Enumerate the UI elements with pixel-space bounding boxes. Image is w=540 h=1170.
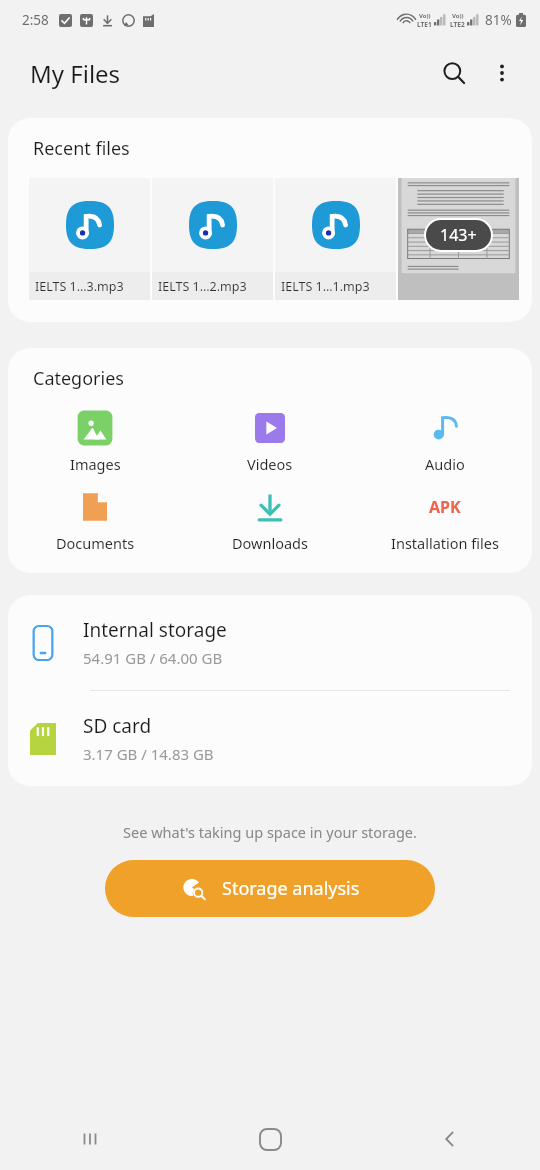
staticText: IELTS 1…3.mp3 [35,278,124,295]
button[interactable]: IELTS 1…2.mp3 [152,178,273,300]
staticText: SD card [83,713,152,739]
staticText: 143+ [440,224,477,246]
staticText: APK [429,496,461,518]
staticText: Recent files [33,136,130,161]
staticText: Vo)) [419,12,431,20]
staticText: My Files [30,57,121,90]
button[interactable]: 143+ [398,178,519,300]
staticText: 3.17 GB / 14.83 GB [83,744,214,764]
staticText: IELTS 1…2.mp3 [158,278,247,295]
button[interactable]: Documents [8,490,182,553]
button[interactable]: APK [357,490,532,553]
button[interactable]: Downloads [182,490,357,553]
button[interactable]: Back [360,1108,540,1170]
staticText: LTE1 [417,20,432,29]
staticText: See what's taking up space in your stora… [0,822,540,842]
button[interactable]: More options [478,49,526,97]
button[interactable]: Storage analysis [105,860,435,917]
staticText: Documents [56,533,135,553]
button[interactable]: Internal storage [8,595,532,690]
staticText: Installation files [391,533,499,553]
button[interactable]: Audio [357,411,532,474]
staticText: IELTS 1…1.mp3 [281,278,370,295]
staticText: 81% [485,11,512,29]
staticText: Videos [247,454,293,474]
button[interactable]: Search [430,49,478,97]
staticText: Internal storage [83,617,227,643]
staticText: 2:58 [22,11,49,29]
staticText: LTE2 [450,20,465,29]
button[interactable]: Home [180,1108,360,1170]
button[interactable]: IELTS 1…1.mp3 [275,178,396,300]
staticText: Categories [33,366,124,391]
button[interactable]: Videos [182,411,357,474]
button[interactable]: IELTS 1…3.mp3 [29,178,150,300]
staticText: Downloads [232,533,308,553]
button[interactable]: SD card [8,691,532,786]
button[interactable]: Recents [0,1108,180,1170]
button[interactable]: Images [8,411,182,474]
staticText: Audio [425,454,465,474]
staticText: Vo)) [452,12,464,20]
staticText: Images [70,454,121,474]
staticText: Storage analysis [222,876,360,901]
staticText: 54.91 GB / 64.00 GB [83,648,223,668]
